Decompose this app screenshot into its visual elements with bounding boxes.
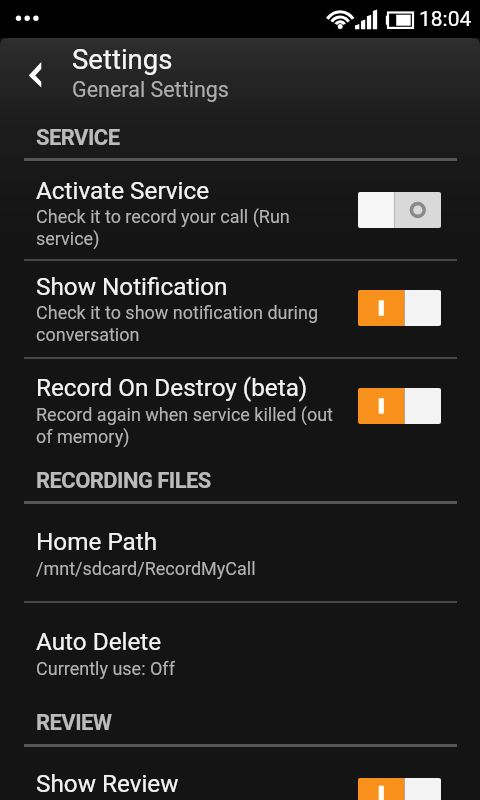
staticText: Currently use: Off <box>36 658 336 679</box>
staticText: Check it to record your call (Run servic… <box>36 206 336 250</box>
button[interactable]: Show Notification <box>0 272 480 359</box>
staticText: Activate Service <box>36 176 210 204</box>
staticText: Show Notification <box>36 272 228 300</box>
staticText: Show Review <box>36 769 179 797</box>
staticText: Record On Destroy (beta) <box>36 373 308 401</box>
staticText: Home Path <box>36 527 158 555</box>
staticText: /mnt/sdcard/RecordMyCall <box>36 558 336 579</box>
staticText: General Settings <box>72 77 229 102</box>
button[interactable]: Auto Delete <box>0 627 480 717</box>
button[interactable]: Back <box>17 62 51 96</box>
staticText: Settings <box>72 43 173 75</box>
button[interactable]: Home Path <box>0 527 480 603</box>
staticText: RECORDING FILES <box>36 468 211 494</box>
staticText: Check it to show notification during con… <box>36 302 336 346</box>
button[interactable]: Record On Destroy (beta) <box>0 373 480 463</box>
button[interactable]: Enabled toggle <box>358 778 441 800</box>
button[interactable]: Show Review <box>0 769 480 800</box>
button[interactable]: Disabled toggle <box>358 192 441 228</box>
button[interactable]: Activate Service <box>0 176 480 261</box>
button[interactable]: Enabled toggle <box>358 388 441 424</box>
staticText: Record again when service killed (out of… <box>36 404 336 448</box>
staticText: Auto Delete <box>36 627 162 655</box>
staticText: SERVICE <box>36 125 120 151</box>
button[interactable]: Enabled toggle <box>358 290 441 326</box>
staticText: REVIEW <box>36 710 112 736</box>
staticText: 18:04 <box>419 7 472 32</box>
